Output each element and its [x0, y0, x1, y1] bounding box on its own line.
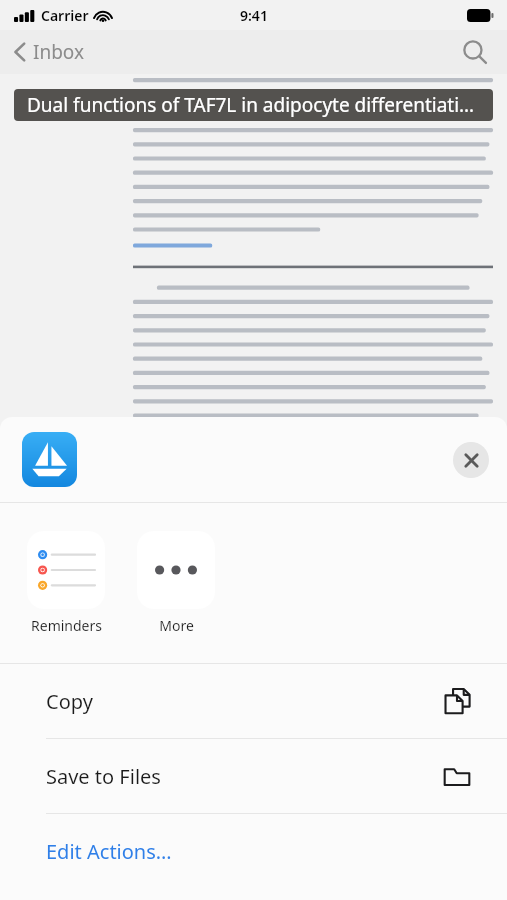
staticText: Edit Actions…	[46, 838, 172, 865]
staticText: Dual functions of TAF7L in adipocyte dif…	[27, 92, 475, 118]
staticText: Inbox	[33, 39, 85, 65]
button[interactable]: More	[137, 531, 215, 635]
button[interactable]: Search	[455, 32, 495, 72]
staticText: Save to Files	[46, 763, 161, 790]
button[interactable]: Reminders	[27, 531, 105, 635]
button[interactable]: Shared document	[22, 432, 77, 487]
button[interactable]: Edit Actions…	[0, 814, 507, 888]
button[interactable]: Copy	[0, 664, 507, 738]
staticText: 9:41	[240, 6, 268, 25]
button[interactable]: Close	[453, 442, 489, 478]
button[interactable]: Save to Files	[0, 739, 507, 813]
button[interactable]: Inbox	[0, 33, 95, 71]
staticText: Carrier	[41, 6, 89, 25]
staticText: Copy	[46, 688, 93, 715]
button[interactable]: Dual functions of TAF7L in adipocyte dif…	[14, 89, 493, 121]
staticText: More	[159, 616, 194, 635]
staticText: Reminders	[31, 616, 102, 635]
